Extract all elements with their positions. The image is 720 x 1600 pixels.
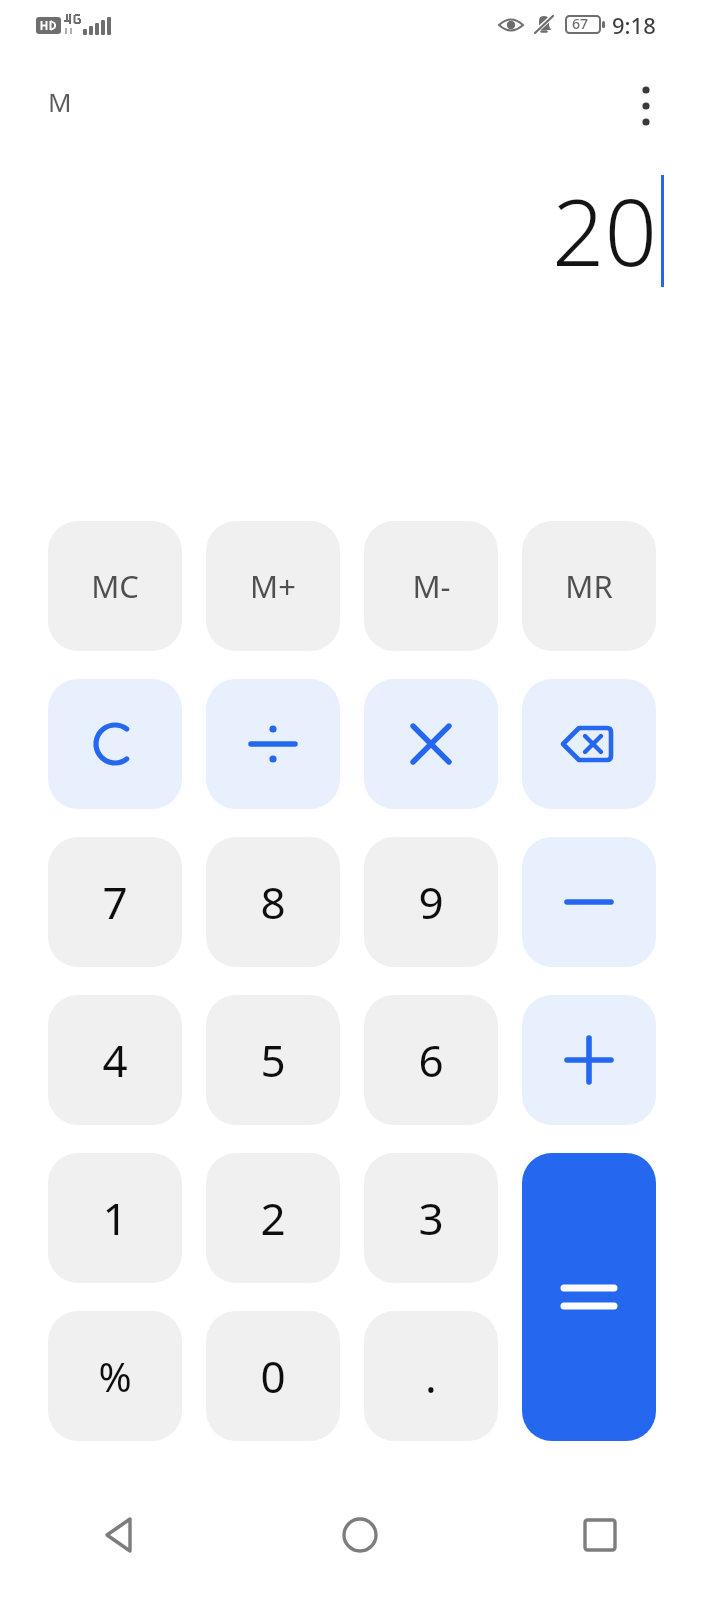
staticText: 1 [102, 1188, 128, 1248]
staticText: 67 [572, 14, 589, 33]
staticText: 9:18 [612, 10, 656, 40]
staticText: % [98, 1349, 132, 1403]
button[interactable]: M- [364, 521, 498, 651]
staticText: 5 [260, 1030, 286, 1090]
button[interactable]: . [364, 1311, 498, 1441]
button[interactable]: Backspace [522, 679, 656, 809]
button[interactable]: MC [48, 521, 182, 651]
button[interactable]: Home [240, 1480, 480, 1590]
staticText: MR [565, 565, 613, 607]
staticText: MC [91, 565, 139, 607]
staticText: 8 [260, 872, 286, 932]
staticText: 3 [418, 1188, 444, 1248]
button[interactable]: Minus [522, 837, 656, 967]
button[interactable]: Clear [48, 679, 182, 809]
button[interactable]: 7 [48, 837, 182, 967]
button[interactable]: 9 [364, 837, 498, 967]
button[interactable]: More options [610, 70, 682, 142]
staticText: M+ [250, 565, 296, 607]
button[interactable]: M+ [206, 521, 340, 651]
button[interactable]: 8 [206, 837, 340, 967]
button[interactable]: 0 [206, 1311, 340, 1441]
button[interactable]: 4 [48, 995, 182, 1125]
button[interactable]: 3 [364, 1153, 498, 1283]
button[interactable]: Equals [522, 1153, 656, 1441]
staticText: . [425, 1346, 437, 1406]
staticText: 20 [551, 168, 657, 293]
button[interactable]: 5 [206, 995, 340, 1125]
staticText: 0 [260, 1346, 286, 1406]
staticText: 9 [418, 872, 444, 932]
staticText: 4 [102, 1030, 128, 1090]
button[interactable]: Back [0, 1480, 240, 1590]
staticText: 6 [418, 1030, 444, 1090]
staticText: 7 [102, 872, 128, 932]
button[interactable]: 2 [206, 1153, 340, 1283]
button[interactable]: % [48, 1311, 182, 1441]
button[interactable]: MR [522, 521, 656, 651]
button[interactable]: Divide [206, 679, 340, 809]
button[interactable]: Recent apps [480, 1480, 720, 1590]
staticText: 2 [260, 1188, 286, 1248]
button[interactable]: 1 [48, 1153, 182, 1283]
button[interactable]: 6 [364, 995, 498, 1125]
button[interactable]: Plus [522, 995, 656, 1125]
staticText: M- [412, 565, 451, 607]
button[interactable]: M [48, 84, 72, 119]
button[interactable]: Multiply [364, 679, 498, 809]
